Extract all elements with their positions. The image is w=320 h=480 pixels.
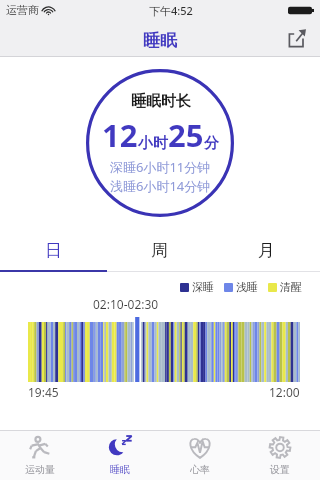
staticText: 19:45 bbox=[28, 384, 59, 400]
staticText: 浅睡 bbox=[236, 280, 258, 294]
staticText: 设置 bbox=[270, 463, 290, 476]
staticText: 12 bbox=[102, 114, 138, 156]
button[interactable]: 心率 bbox=[160, 430, 240, 480]
staticText: 分 bbox=[204, 134, 219, 153]
staticText: 深睡 bbox=[192, 280, 214, 294]
staticText: 睡眠 bbox=[143, 30, 177, 51]
staticText: 25 bbox=[168, 114, 204, 156]
staticText: 运动量 bbox=[25, 463, 55, 476]
staticText: 日 bbox=[45, 240, 62, 261]
staticText: 月 bbox=[258, 240, 275, 261]
staticText: 小时 bbox=[138, 134, 168, 153]
staticText: 深睡6小时11分钟 bbox=[110, 158, 211, 176]
button[interactable]: 睡眠 bbox=[80, 430, 160, 480]
staticText: 02:10-02:30 bbox=[93, 296, 159, 312]
staticText: 清醒 bbox=[280, 280, 302, 294]
staticText: 心率 bbox=[190, 463, 210, 476]
staticText: 下午4:52 bbox=[149, 3, 193, 18]
button[interactable]: 运动量 bbox=[0, 430, 80, 480]
button[interactable]: Share bbox=[280, 21, 314, 55]
staticText: 睡眠时长 bbox=[131, 92, 191, 111]
staticText: 运营商 bbox=[6, 3, 39, 17]
staticText: 12:00 bbox=[269, 384, 300, 400]
staticText: 周 bbox=[151, 240, 168, 261]
button[interactable]: 日 bbox=[0, 229, 106, 272]
staticText: 睡眠 bbox=[110, 463, 130, 476]
button[interactable]: 设置 bbox=[240, 430, 320, 480]
button[interactable]: 周 bbox=[106, 229, 213, 272]
staticText: 浅睡6小时14分钟 bbox=[110, 177, 211, 195]
button[interactable]: 月 bbox=[213, 229, 320, 272]
